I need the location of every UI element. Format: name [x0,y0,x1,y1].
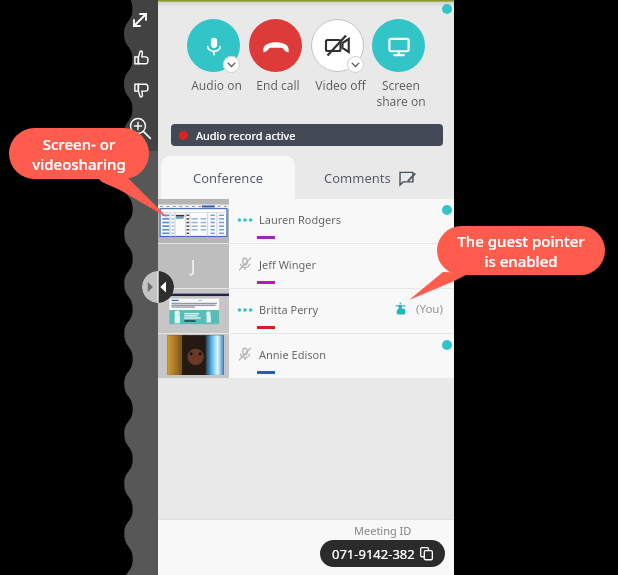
staticText: 071-9142-382 [332,545,415,563]
staticText: J [191,255,196,277]
staticText: The guest pointer is enabled [457,231,585,271]
button[interactable]: Thumbs up [127,43,155,71]
button[interactable]: Britta Perry [158,289,454,333]
staticText: Lauren Rodgers [259,212,341,227]
staticText: End call [256,77,300,93]
staticText: Audio on [191,77,242,93]
staticText: Annie Edison [259,347,326,362]
staticText: Jeff Winger [259,257,317,272]
button[interactable]: End call [248,19,308,93]
staticText: (You) [416,301,443,317]
button[interactable]: Collapse panel [142,271,174,303]
button[interactable]: Annie Edison [158,334,454,378]
button[interactable]: Screen- or videosharing [9,128,149,179]
staticText: Screen- or videosharing [32,134,126,174]
button[interactable]: Thumbs down [127,76,155,104]
button[interactable]: Zoom in [126,114,154,142]
button[interactable]: Conference [161,156,295,199]
button[interactable]: Audio on [186,19,246,93]
button[interactable]: Lauren Rodgers [158,199,454,243]
button[interactable]: 071-9142-382 [320,540,445,567]
staticText: Meeting ID [354,523,412,538]
button[interactable]: The guest pointer is enabled [437,226,605,275]
button[interactable]: Screen share on [371,19,431,110]
button[interactable]: Audio record active [171,124,443,146]
button[interactable]: Full screen [126,6,154,34]
staticText: Screen share on [376,77,426,110]
staticText: Britta Perry [259,302,319,317]
staticText: Conference [193,169,263,187]
staticText: Audio record active [196,128,296,143]
button[interactable]: Video off [310,19,370,93]
button[interactable]: Comments [295,156,454,199]
button[interactable]: J [158,244,454,288]
staticText: Comments [324,169,391,187]
staticText: Video off [315,77,366,93]
